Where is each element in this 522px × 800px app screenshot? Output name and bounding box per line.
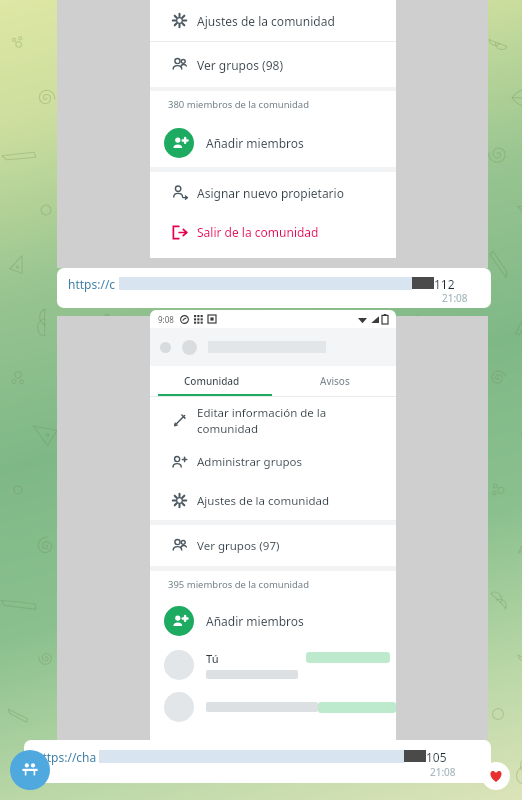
button[interactable]: https://cha <box>24 740 491 783</box>
staticText: 105 <box>426 749 447 765</box>
staticText: 21:08 <box>442 291 468 305</box>
staticText: Ajustes de la comunidad <box>197 13 335 29</box>
button[interactable]: Comunidad <box>150 366 273 396</box>
staticText: https://cha <box>35 749 97 765</box>
staticText: 9:08 <box>158 314 174 325</box>
button[interactable]: Avisos <box>273 366 396 396</box>
button[interactable]: Ver grupos (98) <box>150 42 396 87</box>
button[interactable]: Tú <box>150 644 396 686</box>
staticText: Ver grupos (97) <box>197 538 280 554</box>
button[interactable]: Editar información de la comunidad <box>150 397 396 443</box>
staticText: Tú <box>206 651 219 666</box>
button[interactable]: Salir de la comunidad <box>150 213 396 251</box>
staticText: Avisos <box>320 374 350 388</box>
staticText: Ajustes de la comunidad <box>197 493 330 509</box>
button[interactable]: Nueva comunidad <box>10 750 50 790</box>
staticText: Añadir miembros <box>206 135 304 151</box>
button[interactable]: Ajustes de la comunidad <box>150 481 396 520</box>
staticText: 395 miembros de la comunidad <box>168 578 310 591</box>
button[interactable]: Administrar grupos <box>150 443 396 481</box>
button[interactable]: Asignar nuevo propietario <box>150 172 396 213</box>
staticText: 21:08 <box>430 765 456 779</box>
staticText: https://c <box>68 276 116 292</box>
button[interactable]: Añadir miembros <box>150 598 396 644</box>
staticText: 380 miembros de la comunidad <box>168 98 310 111</box>
staticText: Ver grupos (98) <box>197 57 283 73</box>
staticText: 112 <box>434 276 455 292</box>
button[interactable]: Añadir miembros <box>150 118 396 167</box>
staticText: Editar información de la comunidad <box>197 405 327 436</box>
staticText: Comunidad <box>184 374 240 388</box>
staticText: Salir de la comunidad <box>197 224 319 240</box>
staticText: Añadir miembros <box>206 613 304 629</box>
button[interactable]: Ajustes de la comunidad <box>150 0 396 41</box>
staticText: Asignar nuevo propietario <box>197 185 344 201</box>
button[interactable]: https://c <box>57 268 491 308</box>
button[interactable]: Ver grupos (97) <box>150 525 396 566</box>
button[interactable]: Reacción corazón <box>482 762 510 790</box>
staticText: Administrar grupos <box>197 454 303 470</box>
button[interactable] <box>150 686 396 728</box>
